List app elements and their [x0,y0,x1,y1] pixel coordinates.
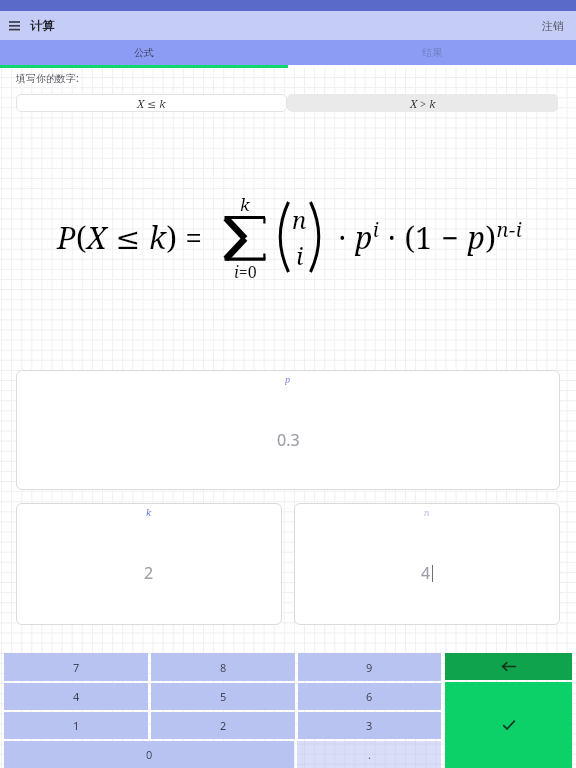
button[interactable]: n [294,503,560,625]
staticText: 4 [73,689,80,704]
button[interactable] [445,653,572,680]
button[interactable] [445,682,572,768]
staticText: 3 [366,718,373,733]
staticText: 结果 [422,46,442,59]
button[interactable]: k [16,503,282,625]
staticText: P(X ≤ k) = [57,217,211,258]
staticText: 1 [73,718,80,733]
button[interactable]: 5 [151,683,295,710]
staticText: 8 [220,660,227,675]
button[interactable]: X > k [287,94,558,112]
button[interactable]: 0 [4,741,294,768]
staticText: . [368,747,371,762]
staticText: 6 [366,689,373,704]
staticText: 计算 [30,18,54,33]
staticText: p [285,373,291,385]
button[interactable]: 6 [298,683,441,710]
staticText: 4 [421,562,431,584]
staticText: k [146,506,152,518]
staticText: 0 [146,747,153,762]
button[interactable]: p [16,370,560,490]
staticText: 注销 [542,19,564,33]
staticText: · pi · (1 − p)n−i [330,216,523,258]
staticText: 公式 [134,46,154,59]
staticText: 0.3 [277,429,300,451]
button[interactable]: 7 [4,653,148,681]
button[interactable]: 1 [4,712,148,739]
staticText: 2 [220,718,227,733]
button[interactable]: X ≤ k [16,94,287,112]
button[interactable]: 公式 [0,40,288,65]
button[interactable]: 4 [4,683,148,710]
button[interactable] [0,11,29,40]
staticText: X ≤ k [137,96,166,111]
staticText: n [424,506,430,518]
staticText: 7 [73,660,80,675]
staticText: 9 [366,660,373,675]
staticText: 填写你的数字: [16,71,79,85]
button[interactable]: 2 [151,712,295,739]
staticText: X > k [410,96,436,111]
staticText: n [292,203,307,236]
staticText: i=0 [234,261,257,281]
staticText: 2 [144,562,154,584]
button[interactable]: 8 [151,653,295,681]
staticText: k [240,193,250,216]
button[interactable]: 注销 [530,11,576,40]
button[interactable]: 结果 [288,40,576,65]
staticText: i [296,239,304,272]
staticText: 5 [220,689,227,704]
button[interactable]: 9 [298,653,441,681]
button[interactable]: 3 [298,712,441,739]
